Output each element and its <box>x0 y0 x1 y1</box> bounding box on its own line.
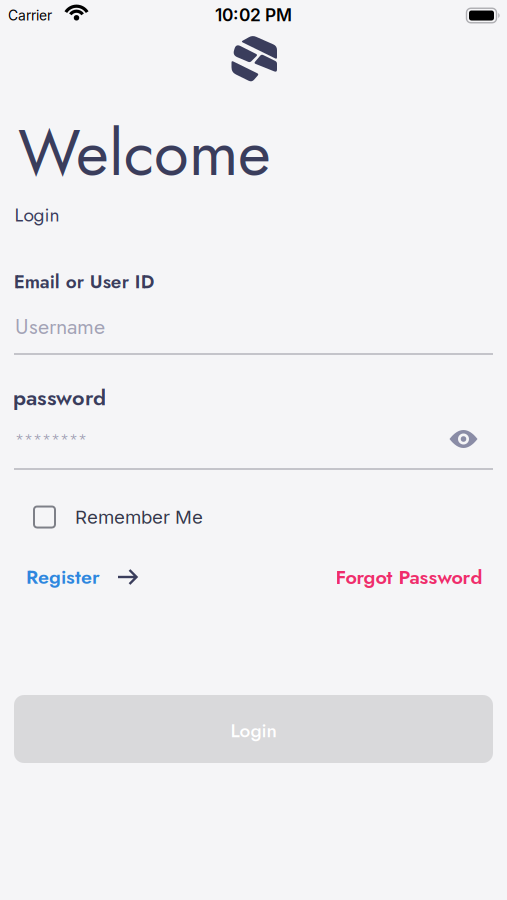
button[interactable]: Remember Me <box>34 506 203 528</box>
staticText: ******** <box>15 428 87 450</box>
staticText: Forgot Password <box>335 563 482 591</box>
staticText: Register <box>26 563 100 591</box>
button[interactable]: Register <box>26 563 138 591</box>
staticText: Login <box>230 717 276 744</box>
staticText: Remember Me <box>75 506 203 528</box>
staticText: Username <box>15 311 105 342</box>
button[interactable]: Show password <box>449 429 477 449</box>
staticText: Welcome <box>18 107 271 199</box>
button[interactable]: Forgot Password <box>335 563 482 591</box>
button[interactable]: Login <box>14 695 493 763</box>
staticText: Carrier <box>8 7 52 24</box>
staticText: Login <box>14 201 59 229</box>
staticText: password <box>13 382 106 413</box>
staticText: Email or User ID <box>14 268 155 295</box>
staticText: 10:02 PM <box>215 4 292 25</box>
